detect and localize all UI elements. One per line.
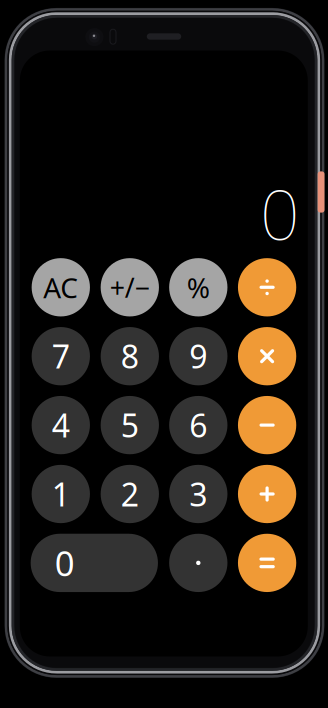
button[interactable]: 2 [101,465,159,523]
button[interactable]: +/− [101,258,159,316]
staticText: 2 [121,473,139,515]
staticText: 6 [189,404,207,446]
button[interactable]: 0 [31,534,158,592]
staticText: 4 [52,404,70,446]
button[interactable]: Equals [238,534,296,592]
staticText: 5 [121,404,139,446]
staticText: 7 [52,335,70,377]
button[interactable]: 5 [101,396,159,454]
staticText: 3 [189,473,207,515]
button[interactable]: AC [32,258,90,316]
staticText: % [187,269,210,306]
button[interactable]: Decimal point [169,534,227,592]
button[interactable]: 7 [32,327,90,385]
staticText: 8 [121,335,139,377]
staticText: 0 [55,540,75,586]
button[interactable]: 4 [32,396,90,454]
button[interactable]: 3 [169,465,227,523]
button[interactable]: Minus [238,396,296,454]
button[interactable]: % [169,258,227,316]
button[interactable]: 1 [32,465,90,523]
button[interactable]: Divide [238,258,296,316]
staticText: +/− [110,270,150,305]
button[interactable]: 6 [169,396,227,454]
button[interactable]: 9 [169,327,227,385]
staticText: 1 [52,473,70,515]
staticText: 9 [189,335,207,377]
button[interactable]: Multiply [238,327,296,385]
button[interactable]: 8 [101,327,159,385]
staticText: 0 [260,167,300,259]
button[interactable]: Plus [238,465,296,523]
staticText: AC [43,269,78,306]
